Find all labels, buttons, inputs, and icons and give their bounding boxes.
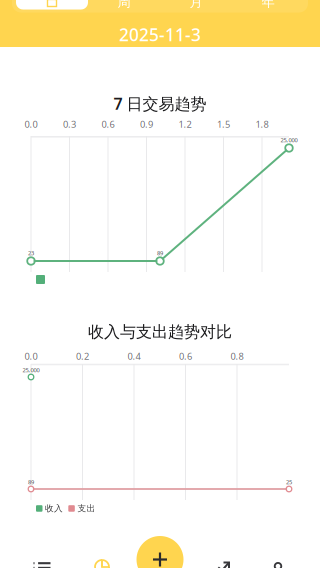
button[interactable]: 记一笔 [136, 536, 183, 568]
staticText: 0.9 [140, 118, 153, 130]
staticText: 年 [261, 0, 274, 10]
staticText: 89 [28, 478, 34, 486]
staticText: 25,000 [22, 366, 39, 374]
staticText: 月 [189, 0, 202, 10]
button[interactable]: 周 [109, 0, 139, 9]
button[interactable]: 月 [181, 0, 211, 9]
staticText: 89 [157, 249, 163, 257]
staticText: 0.8 [230, 350, 243, 362]
staticText: 1.5 [217, 118, 230, 130]
staticText: 1.8 [255, 118, 268, 130]
button[interactable]: 趋势 [197, 555, 247, 568]
staticText: 0.2 [76, 350, 89, 362]
staticText: 收入 [45, 503, 63, 514]
button[interactable]: 明细 [17, 555, 67, 568]
button[interactable]: 图表 [77, 554, 127, 568]
staticText: 25 [286, 478, 292, 486]
staticText: 支出 [77, 503, 95, 514]
staticText: 25,000 [280, 136, 297, 144]
staticText: 收入与支出趋势对比 [88, 322, 232, 342]
button[interactable]: 我的 [253, 556, 303, 568]
staticText: 7 日交易趋势 [113, 93, 206, 114]
staticText: 周 [117, 0, 130, 10]
staticText: 0.3 [63, 118, 76, 130]
staticText: 0.4 [127, 350, 140, 362]
staticText: 0.0 [24, 118, 37, 130]
staticText: 23 [28, 249, 34, 257]
staticText: 1.2 [178, 118, 191, 130]
staticText: 0.6 [179, 350, 192, 362]
staticText: 0.0 [24, 350, 37, 362]
staticText: 2025-11-3 [119, 23, 201, 46]
staticText: 0.6 [101, 118, 114, 130]
button[interactable]: 年 [253, 0, 283, 9]
